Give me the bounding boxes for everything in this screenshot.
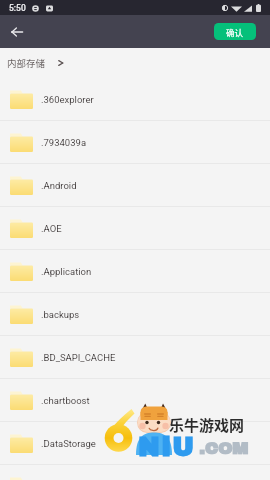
staticText: .BD_SAPI_CACHE — [41, 352, 116, 363]
staticText: .backups — [41, 309, 80, 320]
button[interactable]: .DataStorage — [0, 422, 270, 464]
staticText: NiU — [138, 434, 196, 461]
staticText: .COM — [199, 439, 249, 457]
button[interactable]: .7934039a — [0, 121, 270, 163]
staticText: .DataStorage — [41, 438, 96, 449]
staticText: 内部存储 — [7, 56, 46, 70]
button[interactable]: .AOE — [0, 207, 270, 249]
button[interactable]: .chartboost — [0, 379, 270, 421]
button[interactable]: .360explorer — [0, 78, 270, 120]
staticText: 5:50 — [9, 3, 26, 13]
staticText: .7934039a — [41, 137, 87, 148]
staticText: .AOE — [41, 223, 62, 234]
button[interactable]: Back — [5, 20, 28, 43]
staticText: .chartboost — [41, 395, 90, 406]
staticText: 乐牛游戏网 — [169, 414, 245, 436]
button[interactable]: .backups — [0, 293, 270, 335]
button[interactable]: 内部存储 — [7, 56, 65, 70]
staticText: .Application — [41, 266, 92, 277]
button[interactable]: 确认 — [214, 23, 256, 40]
staticText: .360explorer — [41, 94, 94, 105]
button[interactable]: .Android — [0, 164, 270, 206]
button[interactable]: .Application — [0, 250, 270, 292]
staticText: .Android — [41, 180, 77, 191]
button[interactable]: .BD_SAPI_CACHE — [0, 336, 270, 378]
staticText: 确认 — [226, 26, 244, 38]
